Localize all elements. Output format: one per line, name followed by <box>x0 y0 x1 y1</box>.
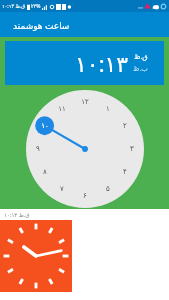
staticText: ب.ظ <box>133 64 148 74</box>
staticText: ۱۰ <box>41 122 49 130</box>
staticText: ۵ <box>106 185 110 193</box>
staticText: ۲۲% <box>31 3 41 10</box>
staticText: ۲ <box>123 122 127 130</box>
button[interactable]: Hour picker dial <box>26 90 144 208</box>
button[interactable]: ساعت هوشمند <box>0 12 169 37</box>
staticText: ۳ <box>130 145 134 153</box>
staticText: ۱۰:۱۳ ق.ظ <box>4 211 30 218</box>
button[interactable]: ۱۰:۱۳ <box>5 41 164 85</box>
staticText: ۶ <box>83 192 87 200</box>
staticText: ق.ظ <box>134 52 148 62</box>
button[interactable]: Analog clock widget <box>0 220 72 292</box>
staticText: ۱۱ <box>58 105 66 113</box>
staticText: ۸ <box>43 168 47 176</box>
staticText: ۴ <box>123 168 127 176</box>
staticText: ساعت هوشمند <box>13 19 70 31</box>
staticText: ۹ <box>36 145 40 153</box>
staticText: ق.ظ ۱۰:۱۳ <box>2 3 26 10</box>
staticText: ۷ <box>60 185 64 193</box>
staticText: ۱۰:۱۳ <box>75 48 129 78</box>
staticText: ۱۲ <box>81 98 89 106</box>
staticText: ۱ <box>106 105 110 113</box>
